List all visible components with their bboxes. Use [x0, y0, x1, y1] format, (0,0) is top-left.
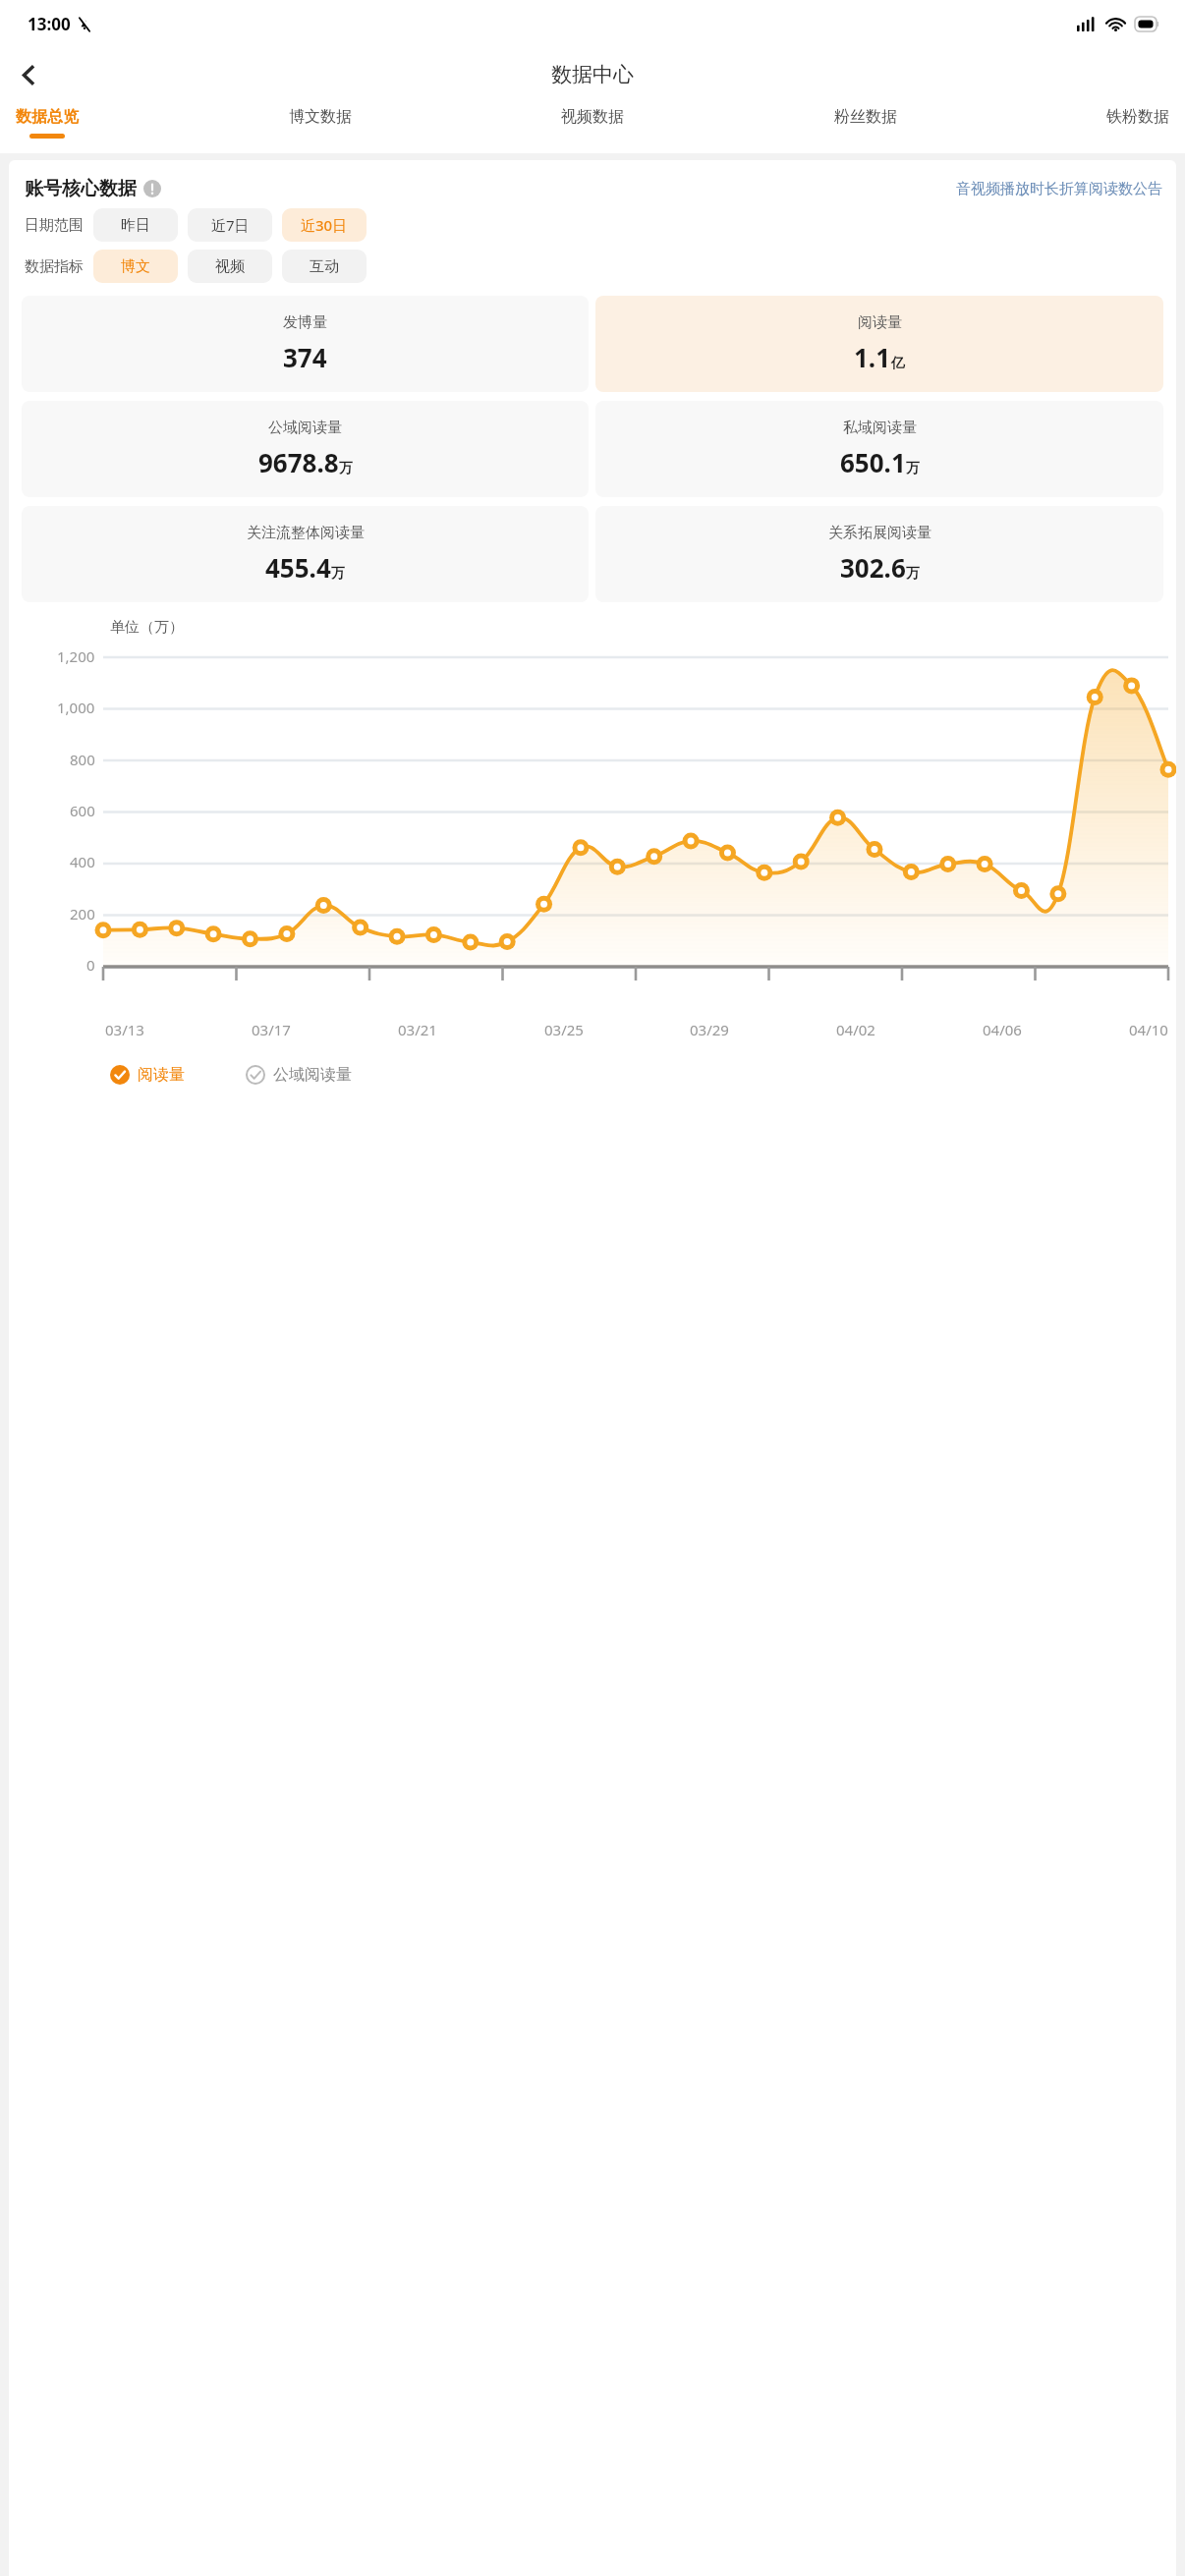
button[interactable]: 音视频播放时长折算阅读数公告: [956, 180, 1162, 198]
staticText: 374: [283, 340, 327, 374]
button[interactable]: 博文: [93, 250, 178, 283]
button[interactable]: 互动: [282, 250, 367, 283]
staticText: 13:00: [28, 13, 71, 35]
button[interactable]: 关系拓展阅读量: [595, 506, 1163, 602]
staticText: 万: [331, 565, 345, 583]
staticText: 数据指标: [25, 257, 84, 276]
staticText: 公域阅读量: [268, 419, 342, 437]
staticText: 互动: [310, 257, 339, 276]
button[interactable]: 铁粉数据: [1106, 101, 1169, 134]
staticText: 数据中心: [551, 62, 634, 87]
staticText: 800: [70, 750, 95, 769]
staticText: 发博量: [283, 313, 327, 332]
staticText: 302.6: [840, 550, 906, 585]
staticText: 04/06: [983, 1020, 1022, 1039]
button[interactable]: 视频: [188, 250, 272, 283]
staticText: 650.1: [840, 445, 906, 479]
button[interactable]: 阅读量: [110, 1065, 185, 1085]
staticText: 粉丝数据: [834, 107, 897, 127]
staticText: 账号核心数据: [25, 177, 137, 200]
staticText: 03/21: [398, 1020, 437, 1039]
staticText: 03/17: [252, 1020, 291, 1039]
staticText: 04/10: [1129, 1020, 1168, 1039]
staticText: 数据总览: [16, 107, 79, 127]
button[interactable]: 关注流整体阅读量: [22, 506, 589, 602]
staticText: 0: [86, 955, 95, 975]
button[interactable]: 粉丝数据: [834, 101, 897, 134]
button[interactable]: 近30日: [282, 208, 367, 242]
staticText: 博文: [121, 257, 150, 276]
staticText: 关系拓展阅读量: [828, 524, 931, 542]
staticText: 万: [906, 460, 920, 477]
staticText: 400: [70, 852, 95, 871]
button[interactable]: Info: [143, 180, 161, 197]
staticText: 关注流整体阅读量: [247, 524, 365, 542]
button[interactable]: 数据总览: [16, 101, 79, 139]
button[interactable]: 博文数据: [289, 101, 352, 134]
button[interactable]: 近7日: [188, 208, 272, 242]
staticText: 近30日: [301, 215, 348, 235]
staticText: 9678.8: [258, 445, 339, 479]
staticText: 1.1: [854, 340, 891, 374]
staticText: 03/29: [690, 1020, 729, 1039]
staticText: 1,200: [57, 646, 95, 666]
staticText: 私域阅读量: [843, 419, 917, 437]
staticText: 视频: [215, 257, 245, 276]
staticText: 视频数据: [561, 107, 624, 127]
staticText: 博文数据: [289, 107, 352, 127]
staticText: 公域阅读量: [273, 1065, 352, 1085]
staticText: 万: [339, 460, 353, 477]
button[interactable]: 视频数据: [561, 101, 624, 134]
staticText: 455.4: [265, 550, 331, 585]
staticText: 昨日: [121, 216, 150, 235]
button[interactable]: 阅读量: [595, 296, 1163, 392]
staticText: 铁粉数据: [1106, 107, 1169, 127]
staticText: 阅读量: [858, 313, 902, 332]
button[interactable]: Back: [5, 51, 52, 98]
button[interactable]: 私域阅读量: [595, 401, 1163, 497]
button[interactable]: 发博量: [22, 296, 589, 392]
staticText: 单位（万）: [110, 618, 184, 637]
staticText: 600: [70, 801, 95, 820]
button[interactable]: 公域阅读量: [22, 401, 589, 497]
staticText: 近7日: [211, 215, 250, 235]
staticText: 04/02: [836, 1020, 875, 1039]
staticText: 1,000: [57, 698, 95, 717]
staticText: 阅读量: [138, 1065, 185, 1085]
staticText: 200: [70, 904, 95, 924]
button[interactable]: 公域阅读量: [246, 1065, 352, 1085]
staticText: 03/13: [105, 1020, 144, 1039]
staticText: 万: [906, 565, 920, 583]
staticText: 03/25: [544, 1020, 584, 1039]
button[interactable]: 昨日: [93, 208, 178, 242]
staticText: 日期范围: [25, 216, 84, 235]
staticText: 亿: [891, 355, 905, 372]
